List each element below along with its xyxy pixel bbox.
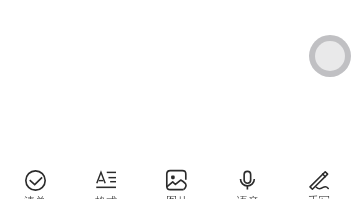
button[interactable]: Picture (141, 145, 212, 199)
staticText: 格式 (95, 194, 117, 199)
button[interactable]: Checklist (0, 145, 70, 199)
button[interactable]: Account (309, 35, 351, 77)
button[interactable]: Format (70, 145, 141, 199)
button[interactable]: Handwriting (283, 145, 354, 199)
staticText: 手写 (308, 194, 330, 199)
staticText: 语音 (237, 194, 259, 199)
staticText: 清单 (24, 194, 46, 199)
button[interactable]: Voice (212, 145, 283, 199)
staticText: 图片 (166, 194, 188, 199)
